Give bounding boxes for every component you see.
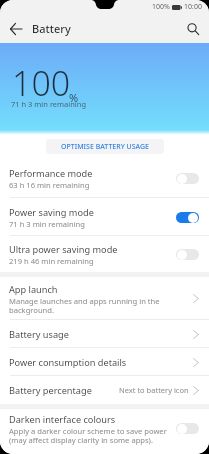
staticText: Power consumption details	[9, 356, 127, 369]
staticText: Apply a darker colour scheme to save pow…	[9, 426, 167, 445]
button[interactable]: Battery usage	[0, 320, 209, 348]
staticText: App launch	[9, 283, 58, 296]
staticText: Manage launches and apps running in the …	[9, 296, 160, 315]
staticText: Battery percentage	[9, 384, 92, 397]
staticText: Battery usage	[9, 328, 69, 341]
button[interactable]: Power saving mode	[0, 198, 209, 236]
staticText: 63 h 16 min remaining	[9, 180, 90, 190]
button[interactable]: Power consumption details	[0, 348, 209, 376]
button[interactable]: Battery percentage	[0, 376, 209, 404]
button[interactable]: OPTIMISE BATTERY USAGE	[46, 139, 164, 154]
button[interactable]: Search	[177, 14, 209, 43]
button[interactable]: Switch off	[176, 173, 199, 184]
button[interactable]: Back	[0, 14, 32, 43]
staticText: 100	[12, 60, 71, 106]
button[interactable]: Performance mode	[0, 159, 209, 198]
button[interactable]: Switch on	[176, 212, 199, 223]
staticText: 71 h 3 min remaining	[11, 99, 87, 109]
staticText: Performance mode	[9, 167, 93, 180]
button[interactable]: Switch off	[176, 423, 199, 434]
staticText: 100%	[152, 2, 170, 12]
staticText: %	[69, 90, 79, 105]
button[interactable]: Darken interface colours	[0, 409, 209, 454]
staticText: 10:00	[184, 2, 202, 12]
button[interactable]: App launch	[0, 277, 209, 320]
staticText: Next to battery icon	[119, 385, 189, 395]
staticText: 219 h 46 min remaining	[9, 256, 94, 266]
button[interactable]: Ultra power saving mode	[0, 236, 209, 272]
staticText: 71 h 3 min remaining	[9, 219, 85, 229]
staticText: Power saving mode	[9, 206, 94, 219]
button[interactable]: Switch off	[176, 249, 199, 260]
staticText: Ultra power saving mode	[9, 243, 118, 256]
staticText: Battery	[32, 21, 71, 36]
staticText: Darken interface colours	[9, 413, 116, 426]
staticText: OPTIMISE BATTERY USAGE	[61, 142, 150, 152]
